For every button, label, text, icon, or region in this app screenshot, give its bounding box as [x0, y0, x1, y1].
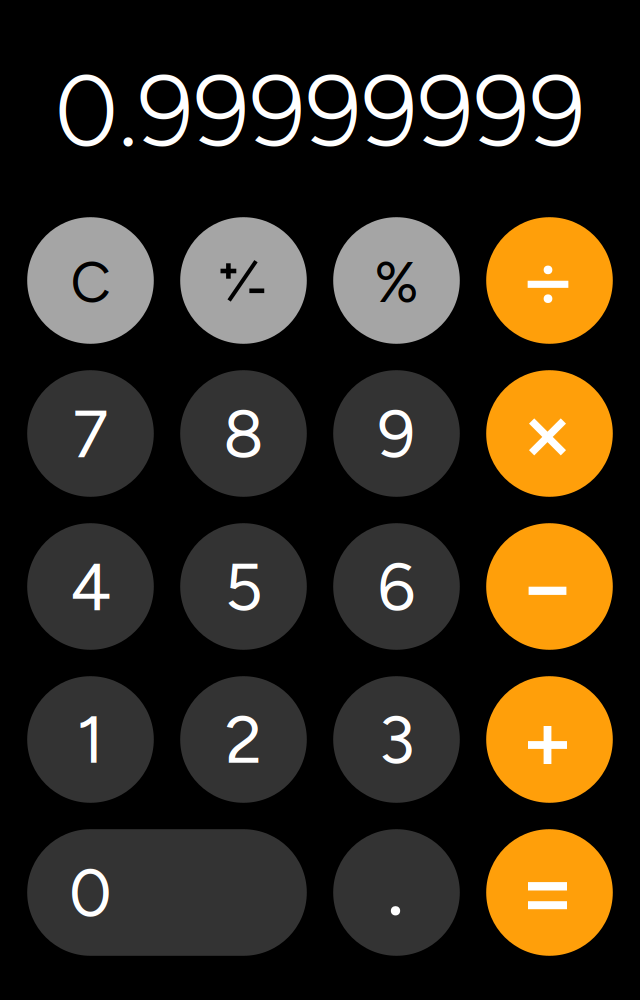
- button[interactable]: 7: [27, 370, 154, 497]
- staticText: C: [70, 249, 110, 316]
- button[interactable]: 9: [333, 370, 460, 497]
- button[interactable]: 8: [180, 370, 307, 497]
- button[interactable]: 1: [27, 676, 154, 803]
- staticText: %: [374, 249, 418, 316]
- button[interactable]: Minus: [486, 523, 613, 650]
- staticText: 2: [225, 699, 262, 779]
- button[interactable]: 6: [333, 523, 460, 650]
- button[interactable]: %: [333, 217, 460, 344]
- staticText: 9: [377, 393, 415, 473]
- button[interactable]: 5: [180, 523, 307, 650]
- staticText: 6: [377, 546, 415, 626]
- button[interactable]: 3: [333, 676, 460, 803]
- button[interactable]: C: [27, 217, 154, 344]
- staticText: 0: [69, 852, 112, 932]
- button[interactable]: 4: [27, 523, 154, 650]
- staticText: 3: [378, 699, 414, 779]
- staticText: 8: [223, 393, 264, 473]
- staticText: 4: [70, 546, 111, 626]
- button[interactable]: Plus: [486, 676, 613, 803]
- button[interactable]: Multiply: [486, 370, 613, 497]
- staticText: 1: [76, 699, 104, 779]
- staticText: 7: [72, 393, 108, 473]
- button[interactable]: 0: [27, 829, 307, 956]
- button[interactable]: Decimal point: [333, 829, 460, 956]
- button[interactable]: Equals: [486, 829, 613, 956]
- staticText: 5: [224, 546, 262, 626]
- button[interactable]: 2: [180, 676, 307, 803]
- button[interactable]: Divide: [486, 217, 613, 344]
- button[interactable]: Plus minus: [180, 217, 307, 344]
- staticText: 0.99999999: [54, 50, 585, 170]
